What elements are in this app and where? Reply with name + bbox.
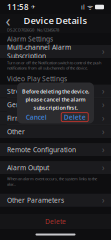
staticText: Remote Configuration xyxy=(7,145,76,154)
staticText: please cancel the alarm xyxy=(25,96,85,103)
staticText: DS-2CD7026G0 No.12345678 xyxy=(7,27,59,33)
staticText: › xyxy=(102,86,104,96)
button[interactable]: Remote Configuration xyxy=(0,143,111,156)
staticText: Other Parameters xyxy=(7,196,64,205)
staticText: › xyxy=(102,162,104,173)
staticText: › xyxy=(102,144,104,155)
staticText: Alarm Settings xyxy=(7,35,53,43)
staticText: › xyxy=(102,113,104,123)
staticText: 11:58 xyxy=(7,2,29,12)
button[interactable]: Alarm Output xyxy=(0,161,111,174)
button[interactable]: General xyxy=(0,98,111,111)
staticText: Delete xyxy=(64,113,86,122)
staticText: › xyxy=(102,195,104,205)
staticText: ‹ xyxy=(5,10,10,31)
staticText: ıl xyxy=(81,3,85,11)
button[interactable]: Other xyxy=(0,125,111,138)
button[interactable]: Stream Setting xyxy=(0,85,111,98)
staticText: ᯤ xyxy=(85,3,95,11)
button[interactable]: Delete xyxy=(0,214,111,229)
staticText: › xyxy=(102,46,104,57)
staticText: Before deleting the device, xyxy=(22,88,89,95)
staticText: Firmware Version xyxy=(7,114,63,123)
staticText: Alarm Output xyxy=(7,163,49,172)
button[interactable]: Back xyxy=(0,14,16,27)
staticText: ✈ xyxy=(29,4,35,10)
staticText: Other xyxy=(7,127,25,136)
staticText: Stream Setting xyxy=(7,87,54,96)
button[interactable]: Cancel xyxy=(17,111,55,123)
staticText: Video Play Settings xyxy=(7,74,67,83)
staticText: › xyxy=(102,99,104,110)
staticText: When an alarm event occurs, the system l… xyxy=(7,176,97,187)
staticText: Multi-channel Alarm Subscription xyxy=(7,43,71,60)
staticText: Cancel xyxy=(26,113,47,122)
button[interactable]: Other Parameters xyxy=(0,194,111,207)
button[interactable]: Firmware Version xyxy=(0,112,111,125)
staticText: Delete xyxy=(45,217,66,226)
staticText: Device Details xyxy=(23,14,87,27)
staticText: subscription first. xyxy=(33,104,77,111)
button[interactable]: Multi-channel Alarm Subscription xyxy=(0,45,111,58)
button[interactable]: Delete xyxy=(55,111,94,123)
staticText: › xyxy=(102,126,104,137)
staticText: Turn on or off the Notification switch t… xyxy=(7,60,101,71)
staticText: General xyxy=(7,100,33,109)
